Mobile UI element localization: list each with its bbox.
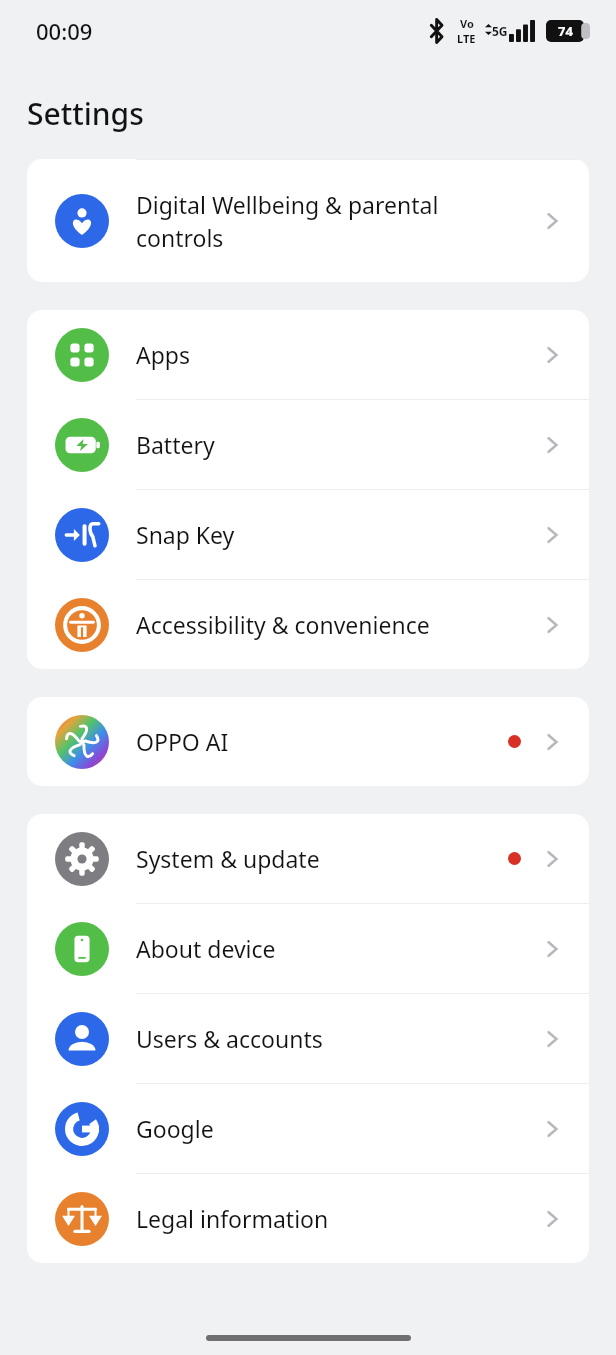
button[interactable]: Users & accounts bbox=[27, 994, 589, 1084]
button[interactable]: Apps bbox=[27, 310, 589, 400]
staticText: Battery bbox=[136, 429, 535, 460]
staticText: System & update bbox=[136, 843, 508, 874]
staticText: Snap Key bbox=[136, 519, 535, 550]
staticText: Apps bbox=[136, 339, 535, 370]
staticText: Accessibility & convenience bbox=[136, 609, 535, 640]
staticText: 5G bbox=[492, 23, 508, 39]
button[interactable]: Snap Key bbox=[27, 490, 589, 580]
button[interactable]: Accessibility & convenience bbox=[27, 580, 589, 669]
button[interactable]: OPPO AI bbox=[27, 697, 589, 786]
button[interactable]: Google bbox=[27, 1084, 589, 1174]
button[interactable]: About device bbox=[27, 904, 589, 994]
staticText: Settings bbox=[27, 93, 144, 134]
button[interactable]: System & update bbox=[27, 814, 589, 904]
staticText: Vo bbox=[460, 16, 474, 31]
button[interactable]: Digital Wellbeing & parental controls bbox=[27, 160, 589, 282]
staticText: Google bbox=[136, 1113, 535, 1144]
staticText: Legal information bbox=[136, 1203, 535, 1234]
staticText: Users & accounts bbox=[136, 1023, 535, 1054]
button[interactable]: Battery bbox=[27, 400, 589, 490]
staticText: Digital Wellbeing & parental controls bbox=[136, 189, 535, 254]
staticText: 00:09 bbox=[36, 16, 93, 46]
staticText: OPPO AI bbox=[136, 726, 508, 757]
staticText: LTE bbox=[457, 31, 476, 46]
staticText: About device bbox=[136, 933, 535, 964]
button[interactable]: Legal information bbox=[27, 1174, 589, 1263]
staticText: 74 bbox=[558, 22, 573, 40]
